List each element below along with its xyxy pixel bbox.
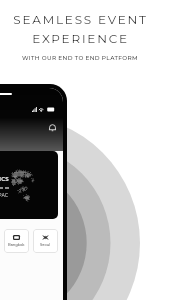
button[interactable]: Notifications xyxy=(45,120,59,134)
staticText: WITH OUR END TO END PLATFORM xyxy=(22,54,138,61)
staticText: Seoul xyxy=(40,243,51,247)
staticText: LOGISTICS xyxy=(0,176,9,183)
staticText: Bangkok xyxy=(8,243,25,247)
button[interactable]: LOGISTICS xyxy=(0,151,58,219)
button[interactable]: Seoul xyxy=(33,229,58,253)
staticText: APAC xyxy=(0,193,9,199)
button[interactable]: Bangkok xyxy=(4,229,29,253)
staticText: SEAMLESS EVENT EXPERIENCE xyxy=(13,12,148,46)
